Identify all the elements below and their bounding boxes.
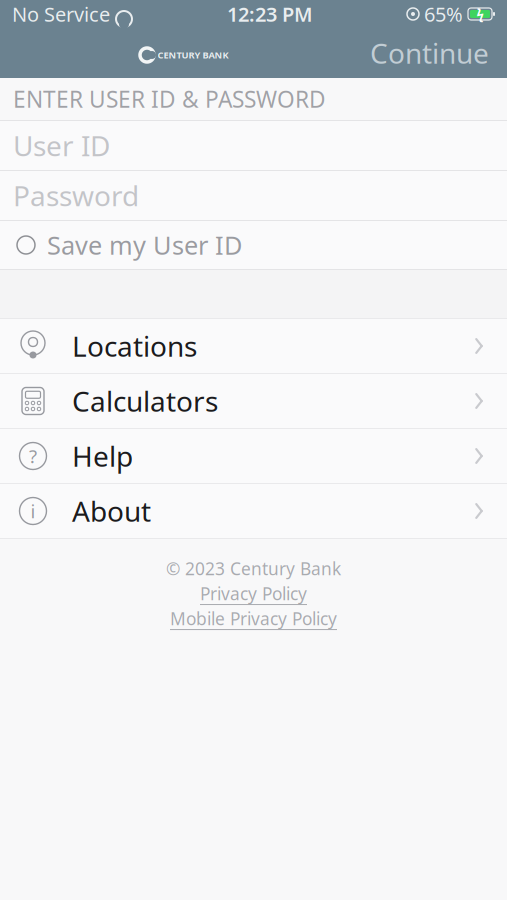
staticText: About [72,492,151,530]
staticText: User ID [13,127,110,164]
staticText: ENTER USER ID & PASSWORD [13,84,326,114]
staticText: Locations [72,327,197,365]
button[interactable]: Privacy Policy [200,582,307,605]
staticText: Password [13,177,139,214]
button[interactable]: Mobile Privacy Policy [170,607,337,630]
staticText: 12:23 PM [227,1,313,27]
button[interactable]: Continue [360,28,499,78]
staticText: ϟ [476,5,483,23]
staticText: ? [29,444,37,468]
staticText: Help [72,437,133,475]
staticText: Privacy Policy [200,582,307,605]
button[interactable]: Save my User ID [0,221,507,270]
staticText: © 2023 Century Bank [166,557,341,580]
staticText: i [30,499,35,523]
staticText: CENTURY BANK [157,49,228,61]
button[interactable]: Calculators [0,374,507,429]
button[interactable]: ? [0,429,507,484]
staticText: 65% [424,1,463,27]
staticText: Save my User ID [47,228,242,262]
staticText: Continue [370,34,489,72]
staticText: Calculators [72,382,218,420]
button[interactable]: Locations [0,319,507,374]
button[interactable]: i [0,484,507,539]
staticText: Mobile Privacy Policy [170,607,337,630]
staticText: No Service [12,1,110,27]
